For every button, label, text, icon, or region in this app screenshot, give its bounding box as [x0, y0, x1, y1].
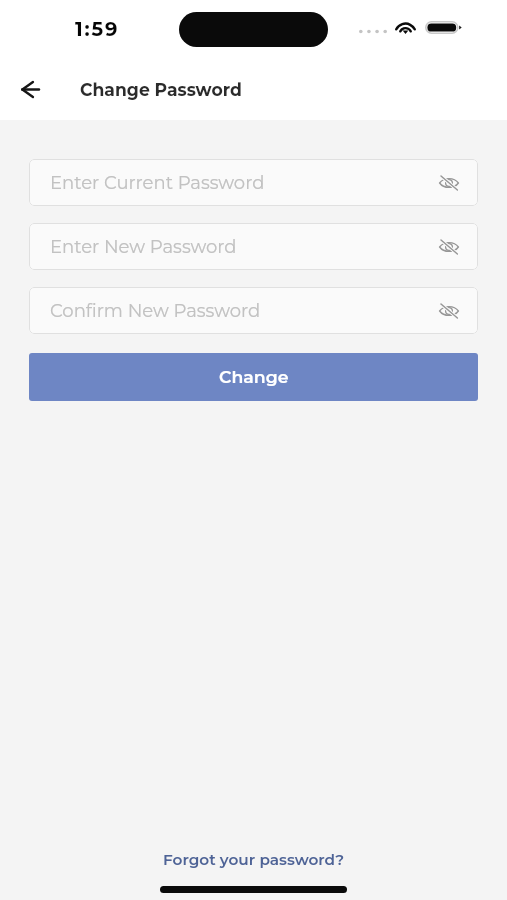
button[interactable]: Back	[10, 69, 50, 109]
button[interactable]: Change	[29, 353, 478, 401]
button[interactable]: Confirm New Password	[29, 287, 478, 334]
staticText: Change Password	[80, 79, 242, 100]
button[interactable]: Enter Current Password	[29, 159, 478, 206]
staticText: Confirm New Password	[50, 300, 434, 322]
button[interactable]: Forgot your password?	[0, 840, 507, 870]
button[interactable]: Show password	[434, 296, 464, 326]
staticText: Enter New Password	[50, 236, 434, 258]
staticText: Enter Current Password	[50, 172, 434, 194]
staticText: Change	[219, 366, 289, 387]
button[interactable]: Show password	[434, 232, 464, 262]
button[interactable]: Enter New Password	[29, 223, 478, 270]
staticText: Forgot your password?	[163, 850, 345, 869]
staticText: 1:59	[75, 17, 120, 41]
button[interactable]: Show password	[434, 168, 464, 198]
